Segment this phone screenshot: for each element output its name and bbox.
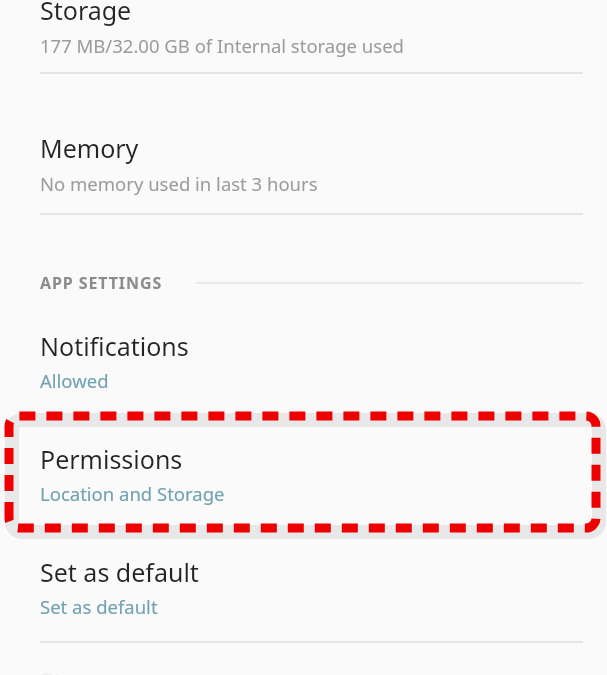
staticText: Set as default	[40, 594, 158, 619]
staticText: No memory used in last 3 hours	[40, 171, 318, 196]
button[interactable]: Set as default	[0, 533, 607, 641]
staticText: Set as default	[40, 555, 199, 589]
staticText: Storage	[40, 0, 132, 27]
staticText: Allowed	[40, 368, 109, 393]
staticText: Location and Storage	[40, 481, 225, 506]
button[interactable]: Permissions	[0, 411, 607, 529]
staticText: 177 MB/32.00 GB of Internal storage used	[40, 33, 404, 58]
staticText: Memory	[40, 131, 139, 165]
staticText: APP SETTINGS	[40, 272, 163, 294]
button[interactable]: Notifications	[0, 306, 607, 408]
button[interactable]: Memory	[0, 74, 607, 213]
button[interactable]: Storage	[0, 0, 607, 72]
staticText: Permissions	[40, 442, 183, 476]
staticText: Notifications	[40, 329, 189, 363]
